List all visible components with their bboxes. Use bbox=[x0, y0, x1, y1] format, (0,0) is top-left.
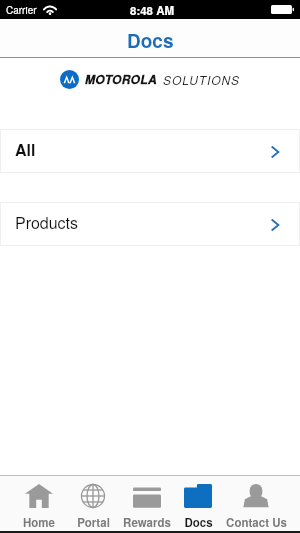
staticText: 8:48 AM bbox=[130, 2, 175, 18]
button[interactable]: Home bbox=[11, 476, 67, 531]
button[interactable]: Contact Us bbox=[228, 476, 284, 531]
staticText: Rewards bbox=[123, 514, 171, 530]
staticText: MOTOROLA bbox=[85, 71, 157, 88]
staticText: Carrier bbox=[6, 3, 37, 17]
staticText: Docs bbox=[127, 27, 174, 54]
staticText: Home bbox=[23, 514, 55, 530]
staticText: SOLUTIONS bbox=[163, 71, 240, 88]
button[interactable]: Rewards bbox=[119, 476, 175, 531]
staticText: Docs bbox=[184, 514, 213, 530]
button[interactable]: All bbox=[0, 129, 300, 173]
staticText: All bbox=[15, 138, 36, 161]
button[interactable]: Docs bbox=[170, 476, 226, 531]
staticText: Products bbox=[15, 211, 79, 234]
staticText: Portal bbox=[77, 514, 110, 530]
button[interactable]: Products bbox=[0, 202, 300, 246]
button[interactable]: Portal bbox=[65, 476, 121, 531]
staticText: Contact Us bbox=[226, 514, 287, 530]
